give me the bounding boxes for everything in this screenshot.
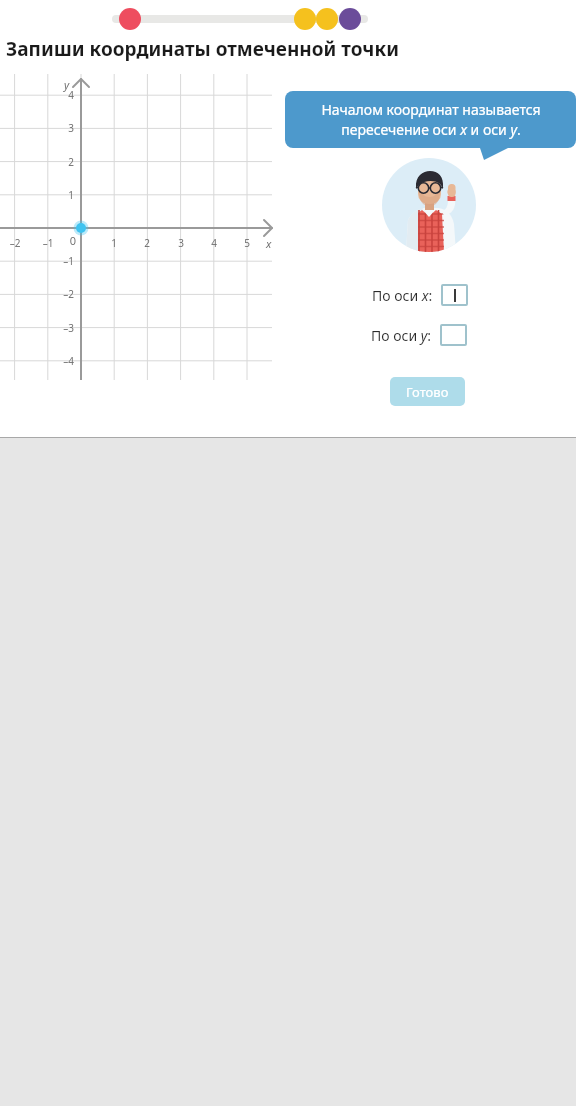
button[interactable]	[441, 284, 468, 306]
staticText: По оси y:	[371, 326, 432, 345]
staticText: Запиши координаты отмеченной точки	[6, 36, 399, 62]
staticText: 3	[173, 236, 189, 250]
staticText: 1	[56, 188, 74, 202]
staticText: 3	[56, 121, 74, 135]
staticText: –1	[56, 254, 74, 268]
staticText: –3	[56, 321, 74, 335]
staticText: 0	[66, 233, 80, 248]
staticText: –2	[56, 287, 74, 301]
staticText: 4	[206, 236, 222, 250]
staticText: –2	[7, 236, 23, 250]
button[interactable]	[440, 324, 467, 346]
staticText: 2	[139, 236, 155, 250]
staticText: 5	[239, 236, 255, 250]
staticText: 1	[106, 236, 122, 250]
staticText: По оси x:	[372, 286, 433, 305]
staticText: Готово	[406, 383, 449, 401]
staticText: y	[64, 77, 70, 92]
staticText: –1	[40, 236, 56, 250]
staticText: –4	[56, 354, 74, 368]
staticText: 4	[56, 88, 74, 102]
staticText: x	[266, 236, 272, 251]
staticText: Началом координат называется пересечение…	[321, 100, 541, 139]
button[interactable]: Готово	[390, 377, 465, 406]
staticText: 2	[56, 155, 74, 169]
